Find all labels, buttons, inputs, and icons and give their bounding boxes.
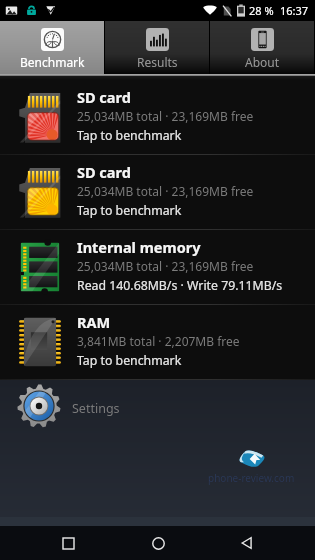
button[interactable]: Home	[137, 526, 179, 560]
staticText: 25,034MB total · 23,169MB free	[77, 183, 254, 199]
staticText: Read 140.68MB/s · Write 79.11MB/s	[77, 277, 283, 294]
button[interactable]: SD card	[0, 80, 315, 154]
staticText: SD card	[77, 87, 131, 107]
button[interactable]: Results	[105, 21, 210, 74]
staticText: Tap to benchmark	[77, 202, 182, 219]
staticText: 25,034MB total · 23,169MB free	[77, 258, 254, 274]
staticText: 16:37	[280, 3, 309, 18]
staticText: 25,034MB total · 23,169MB free	[77, 108, 254, 124]
button[interactable]: Benchmark	[0, 21, 105, 74]
staticText: About	[245, 54, 280, 70]
button[interactable]: Settings	[0, 380, 315, 436]
button[interactable]: Back	[226, 526, 268, 560]
staticText: Benchmark	[20, 54, 85, 70]
staticText: SD card	[77, 162, 131, 182]
button[interactable]: Internal memory	[0, 230, 315, 304]
staticText: Internal memory	[77, 237, 201, 257]
button[interactable]: RAM	[0, 305, 315, 379]
staticText: Settings	[72, 400, 120, 417]
staticText: 3,841MB total · 2,207MB free	[77, 333, 240, 349]
button[interactable]: SD card	[0, 155, 315, 229]
staticText: Tap to benchmark	[77, 352, 182, 369]
staticText: phone-review.com	[208, 471, 295, 485]
staticText: Tap to benchmark	[77, 127, 182, 144]
button[interactable]: Recent apps	[47, 526, 89, 560]
staticText: 28 %	[249, 3, 274, 18]
staticText: RAM	[77, 312, 111, 332]
staticText: Results	[137, 54, 178, 70]
button[interactable]: About	[210, 21, 315, 74]
